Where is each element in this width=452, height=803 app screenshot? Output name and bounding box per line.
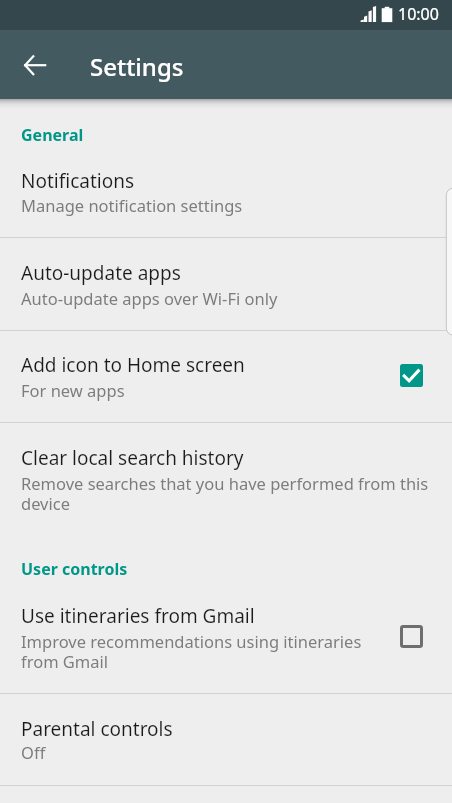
button[interactable]: Use itineraries from Gmail [0, 541, 452, 693]
staticText: 10:00 [398, 3, 439, 25]
button[interactable]: Enabled, checked [394, 358, 429, 393]
staticText: Manage notification settings [21, 194, 243, 216]
staticText: Auto-update apps over Wi-Fi only [21, 287, 278, 309]
staticText: For new apps [21, 379, 125, 401]
button[interactable]: Auto-update apps [0, 238, 452, 330]
staticText: Improve recommendations using itinerarie… [21, 630, 373, 673]
button[interactable]: Add icon to Home screen [0, 331, 452, 422]
button[interactable]: Clear local search history [0, 423, 452, 540]
staticText: Use itineraries from Gmail [21, 603, 255, 629]
staticText: User controls [21, 558, 128, 580]
staticText: Notifications [21, 168, 135, 194]
button[interactable]: Parental controls [0, 694, 452, 785]
staticText: Settings [90, 50, 184, 83]
staticText: Auto-update apps [21, 260, 181, 286]
staticText: Remove searches that you have performed … [21, 472, 431, 515]
button[interactable]: Disabled, unchecked [394, 619, 429, 654]
button[interactable]: Navigate up [15, 45, 55, 85]
staticText: General [21, 124, 84, 146]
staticText: Add icon to Home screen [21, 352, 245, 378]
staticText: Off [21, 741, 46, 763]
staticText: Clear local search history [21, 445, 244, 471]
staticText: Parental controls [21, 716, 173, 742]
button[interactable]: Notifications [0, 99, 452, 237]
